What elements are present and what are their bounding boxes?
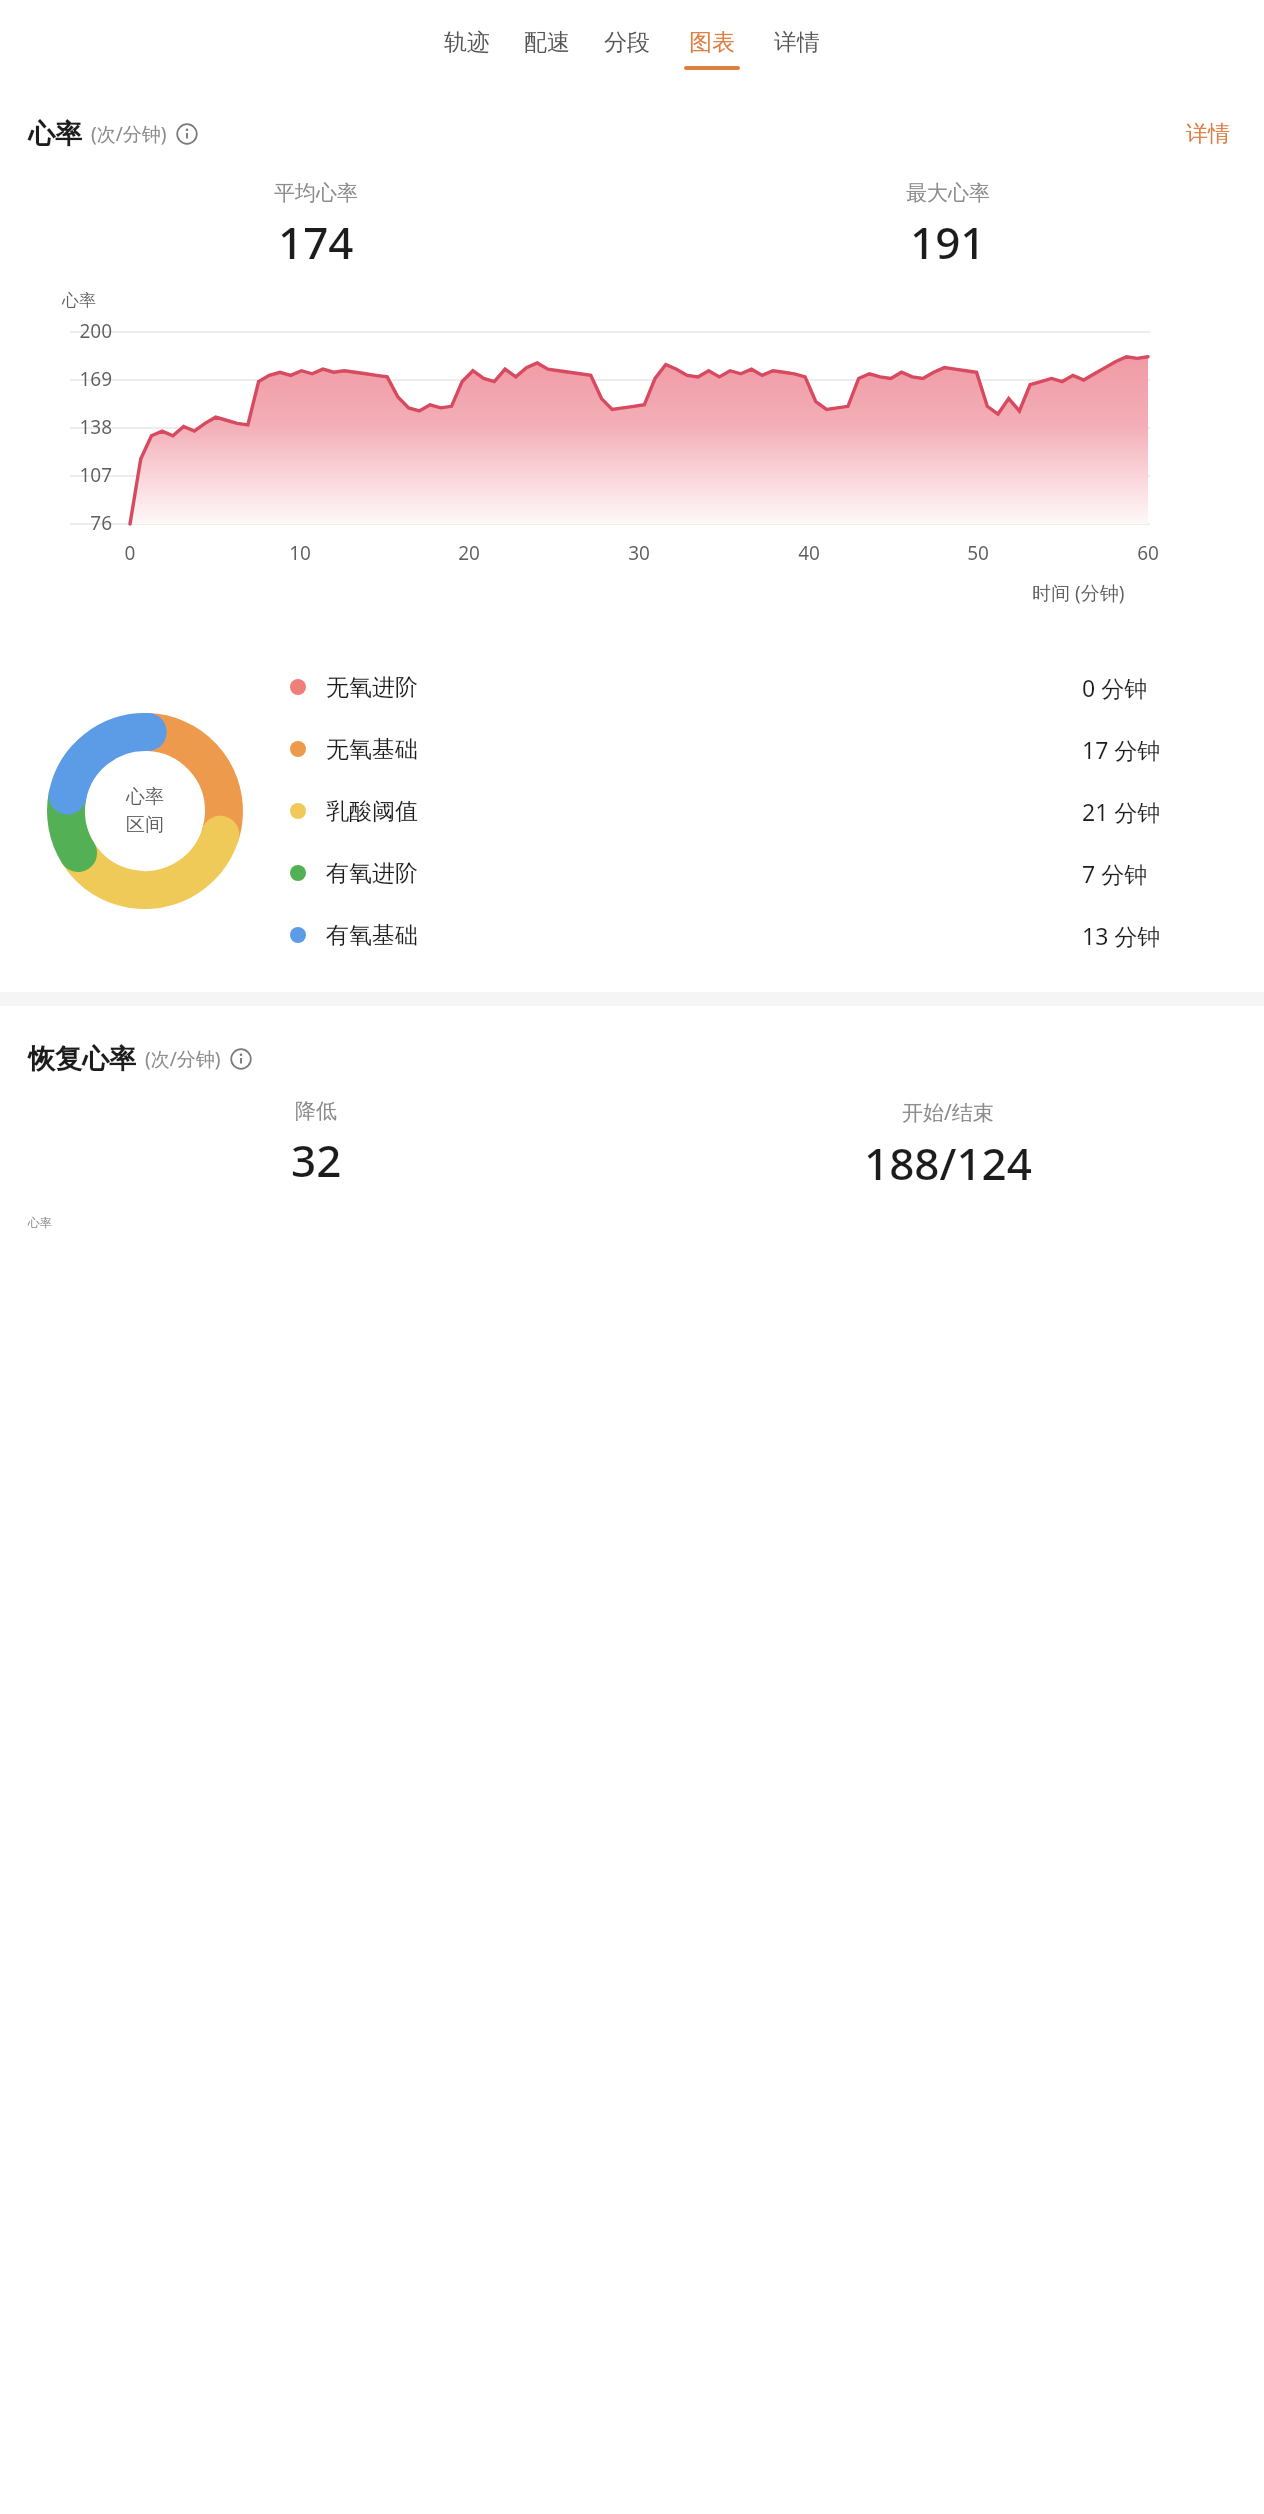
staticText: 188/124 xyxy=(864,1133,1032,1193)
staticText: 191 xyxy=(910,212,986,272)
staticText: 有氧进阶 xyxy=(326,859,418,888)
staticText: 76 xyxy=(50,510,112,536)
staticText: 配速 xyxy=(524,28,570,57)
button[interactable]: 有氧基础 xyxy=(290,904,1234,966)
staticText: 降低 xyxy=(295,1098,337,1124)
staticText: 心率 xyxy=(62,290,96,311)
button[interactable]: 图表 xyxy=(667,26,757,72)
button[interactable]: 无氧进阶 xyxy=(290,656,1234,718)
staticText: 图表 xyxy=(689,28,735,57)
staticText: 200 xyxy=(50,318,112,344)
staticText: 心率 xyxy=(28,1215,52,1230)
staticText: 开始/结束 xyxy=(902,1098,994,1127)
staticText: 50 xyxy=(958,540,998,566)
button[interactable]: 有氧进阶 xyxy=(290,842,1234,904)
staticText: 17 分钟 xyxy=(1082,734,1234,765)
staticText: 107 xyxy=(50,462,112,488)
staticText: 轨迹 xyxy=(444,28,490,57)
staticText: 详情 xyxy=(774,28,820,57)
staticText: 时间 (分钟) xyxy=(1032,580,1125,606)
staticText: 30 xyxy=(619,540,659,566)
staticText: 无氧进阶 xyxy=(326,673,418,702)
button[interactable]: 配速 xyxy=(507,26,587,72)
staticText: 138 xyxy=(50,414,112,440)
staticText: 无氧基础 xyxy=(326,735,418,764)
staticText: 0 xyxy=(110,540,150,566)
staticText: 20 xyxy=(449,540,489,566)
staticText: 7 分钟 xyxy=(1082,858,1234,889)
staticText: 心率 xyxy=(28,117,82,151)
staticText: 40 xyxy=(789,540,829,566)
staticText: 13 分钟 xyxy=(1082,920,1234,951)
staticText: 174 xyxy=(278,212,354,272)
staticText: 0 分钟 xyxy=(1082,672,1234,703)
staticText: 恢复心率 xyxy=(28,1042,136,1076)
staticText: 有氧基础 xyxy=(326,921,418,950)
staticText: 最大心率 xyxy=(906,180,990,206)
staticText: (次/分钟) xyxy=(91,121,167,147)
staticText: 心率 xyxy=(126,785,164,809)
staticText: 详情 xyxy=(1186,120,1230,148)
button[interactable]: 说明 xyxy=(176,123,198,145)
button[interactable]: 无氧基础 xyxy=(290,718,1234,780)
button[interactable]: 详情 xyxy=(757,26,837,72)
button[interactable]: 乳酸阈值 xyxy=(290,780,1234,842)
button[interactable]: 轨迹 xyxy=(427,26,507,72)
staticText: 区间 xyxy=(126,813,164,837)
staticText: (次/分钟) xyxy=(145,1046,221,1072)
staticText: 21 分钟 xyxy=(1082,796,1234,827)
button[interactable]: 详情 xyxy=(1180,114,1236,154)
staticText: 32 xyxy=(291,1130,342,1190)
staticText: 10 xyxy=(280,540,320,566)
staticText: 60 xyxy=(1128,540,1168,566)
button[interactable]: 说明 xyxy=(230,1048,252,1070)
staticText: 平均心率 xyxy=(274,180,358,206)
button[interactable]: 分段 xyxy=(587,26,667,72)
staticText: 169 xyxy=(50,366,112,392)
staticText: 分段 xyxy=(604,28,650,57)
staticText: 乳酸阈值 xyxy=(326,797,418,826)
